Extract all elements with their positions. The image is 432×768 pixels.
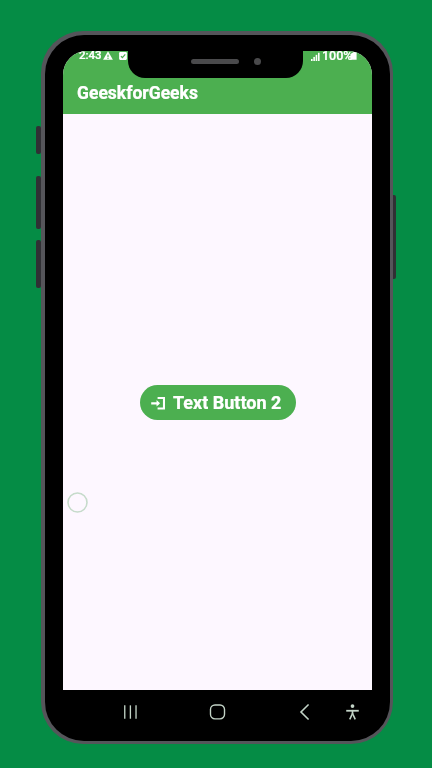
staticText: Text Button 2 (173, 392, 282, 413)
staticText: GeeskforGeeks (77, 83, 198, 104)
button[interactable]: Accessibility (330, 690, 374, 734)
button[interactable]: Text Button 2 (140, 385, 296, 420)
button[interactable]: Back (282, 690, 326, 734)
staticText: 100% (322, 51, 353, 63)
staticText: 2:43 (79, 51, 102, 61)
button[interactable]: Home (195, 690, 239, 734)
button[interactable]: Recent apps (108, 690, 152, 734)
